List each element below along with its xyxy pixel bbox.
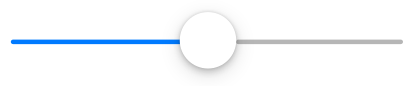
button[interactable]: Slider knob: [180, 12, 236, 68]
